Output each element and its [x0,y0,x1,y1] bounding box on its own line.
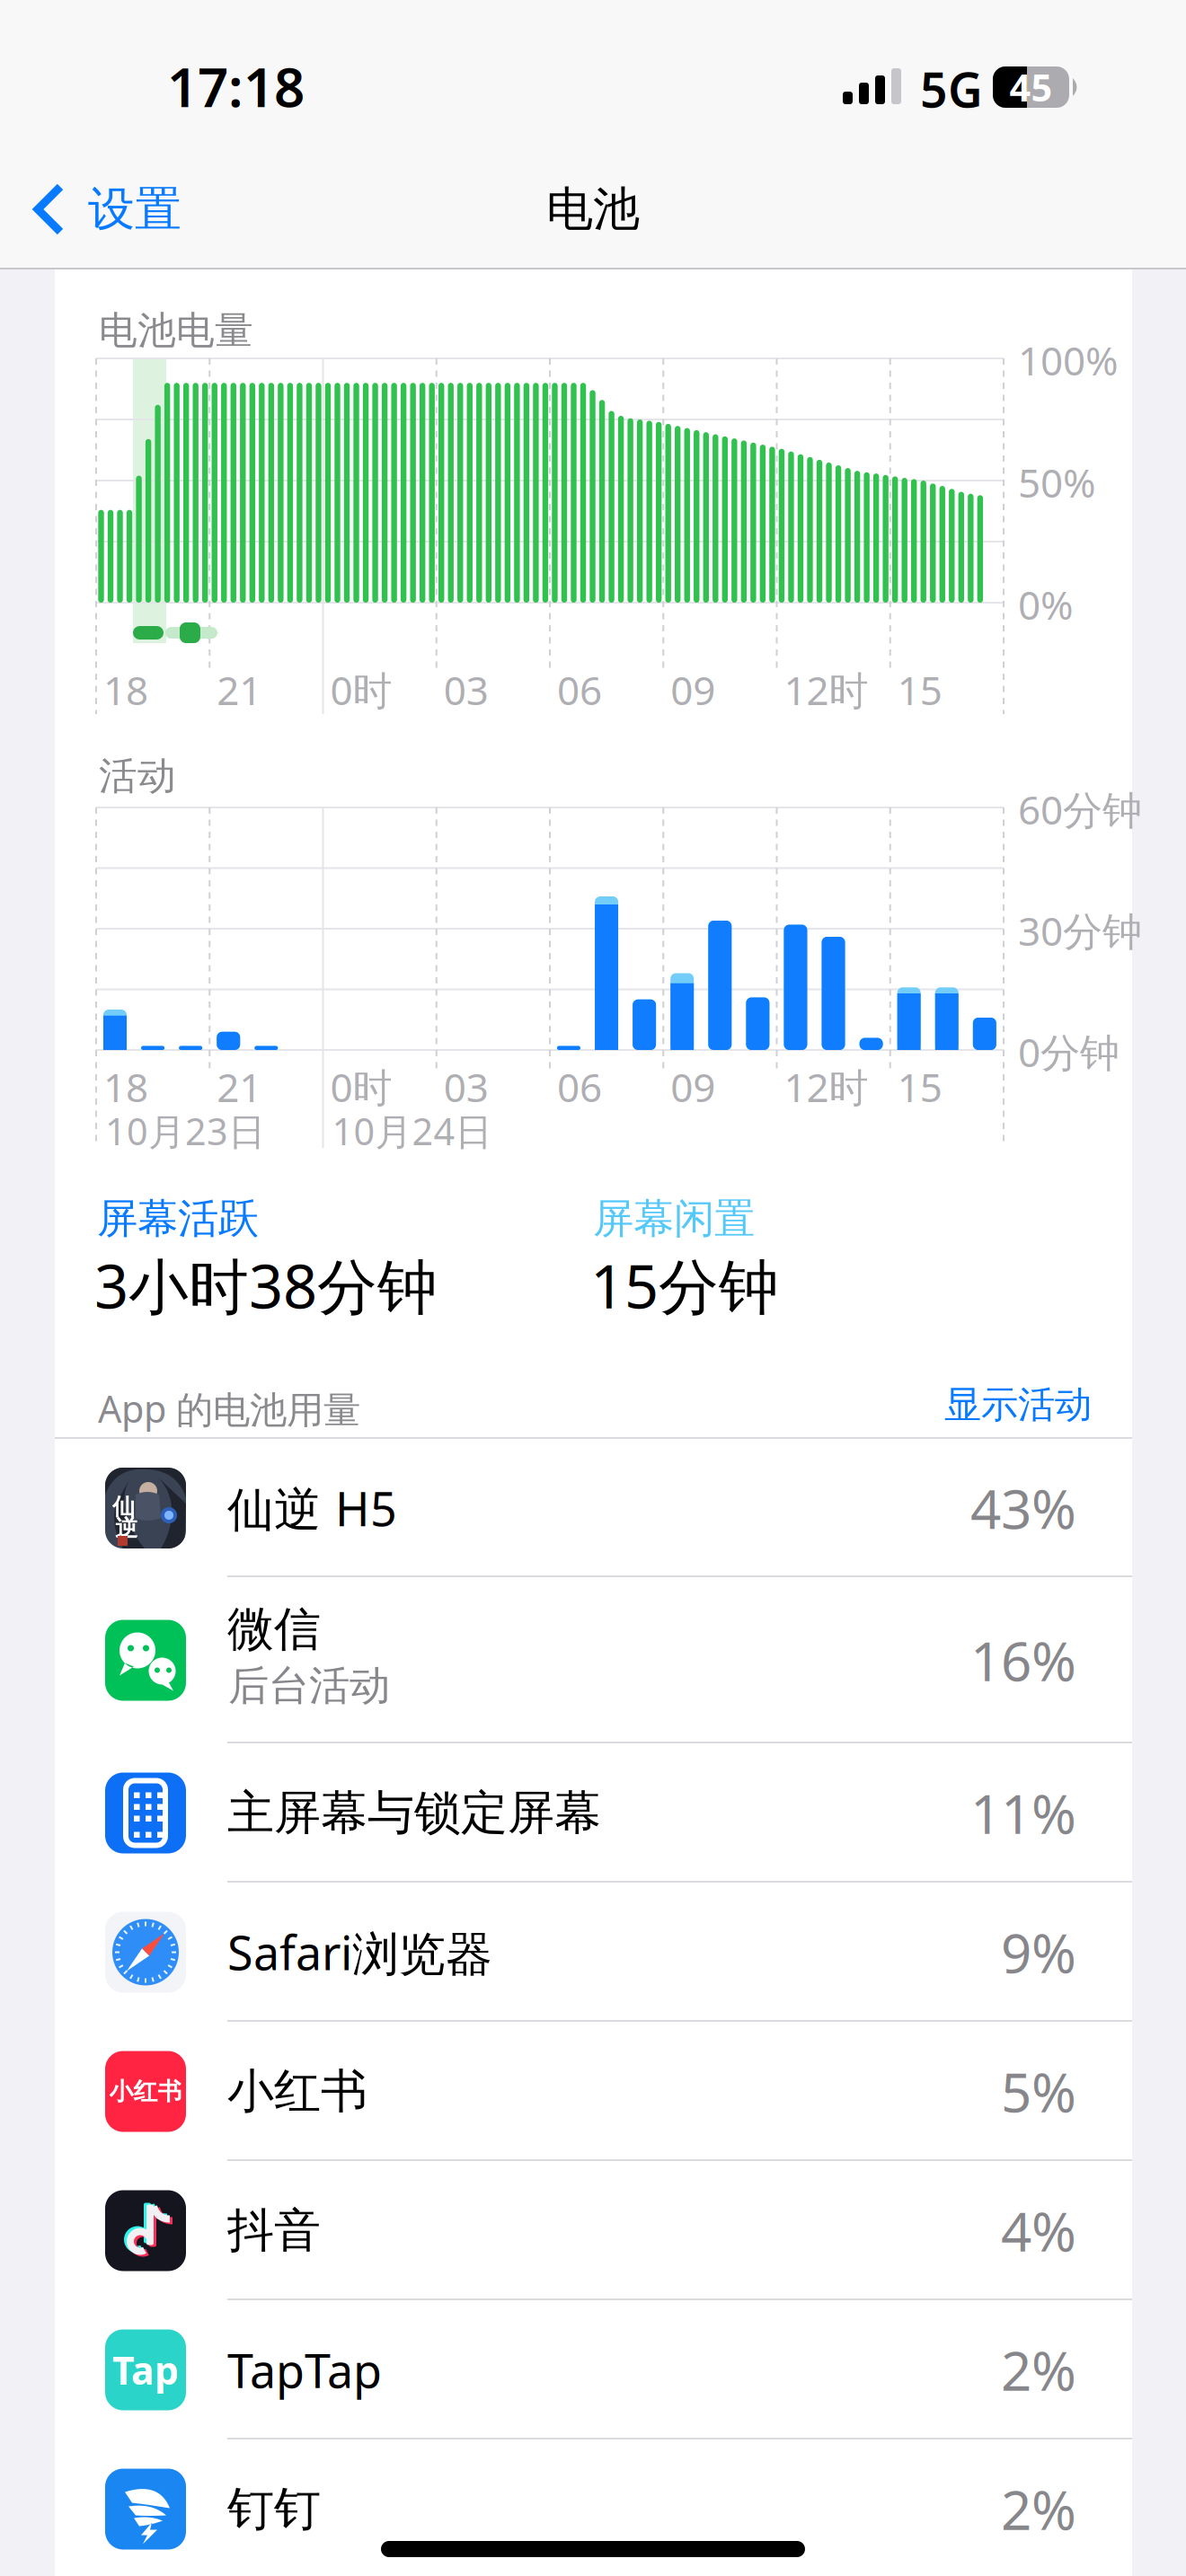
staticText: 设置 [88,181,181,238]
staticText: 5G [920,57,983,121]
staticText: 30分钟 [1018,904,1142,957]
button[interactable]: 返回设置 [33,169,267,250]
button[interactable]: 仙逆 H5 [55,1439,1132,1577]
staticText: 09 [670,1061,715,1113]
button[interactable]: 钉钉 [55,2439,1132,2576]
staticText: Safari浏览器 [227,1921,492,1983]
staticText: 50% [1018,456,1096,509]
staticText: 微信 [227,1601,321,1658]
staticText: 抖音 [227,2202,321,2259]
staticText: 3小时38分钟 [94,1246,438,1325]
staticText: Tap [112,2344,179,2395]
button[interactable]: 小红书 [55,2022,1132,2161]
button[interactable]: 微信 [55,1577,1132,1743]
staticText: TapTap [227,2339,382,2401]
staticText: 21 [217,664,262,716]
staticText: 18 [103,1061,148,1113]
staticText: 仙逆 H5 [227,1477,397,1539]
button[interactable]: TapTap [55,2300,1132,2439]
staticText: 17:18 [167,50,305,122]
staticText: 0分钟 [1018,1026,1120,1078]
button[interactable]: Safari浏览器 [55,1883,1132,2022]
staticText: 06 [557,664,602,716]
staticText: 5% [1001,2056,1076,2127]
staticText: 09 [670,664,715,716]
staticText: 03 [444,1061,489,1113]
staticText: 43% [970,1472,1076,1544]
staticText: 活动 [99,753,176,800]
staticText: 100% [1018,334,1119,386]
staticText: 电池 [546,181,640,238]
staticText: App 的电池用量 [98,1384,360,1433]
staticText: 逆 [115,1514,137,1542]
staticText: 12时 [784,664,868,716]
staticText: 15分钟 [590,1246,779,1325]
staticText: 03 [444,664,489,716]
staticText: 显示活动 [944,1382,1092,1428]
staticText: 06 [557,1061,602,1113]
staticText: 2% [1001,2473,1076,2545]
staticText: 屏幕闲置 [593,1194,755,1244]
staticText: 11% [970,1777,1076,1849]
staticText: 0% [1018,578,1074,631]
staticText: 10月23日 [105,1106,265,1156]
staticText: 18 [103,664,148,716]
staticText: 屏幕活跃 [97,1194,259,1244]
staticText: 16% [970,1625,1076,1696]
staticText: 小红书 [227,2063,367,2120]
button[interactable]: 显示活动 [822,1377,1092,1433]
staticText: 2% [1001,2334,1076,2406]
button[interactable]: 主屏幕与锁定屏幕 [55,1743,1132,1883]
staticText: 4% [1001,2195,1076,2266]
staticText: 12时 [784,1061,868,1113]
staticText: 45 [1009,63,1053,112]
staticText: 21 [217,1061,262,1113]
staticText: 钉钉 [227,2480,321,2538]
staticText: 0时 [330,1061,392,1113]
staticText: 电池电量 [99,307,253,354]
staticText: 9% [1001,1916,1076,1988]
staticText: 主屏幕与锁定屏幕 [227,1784,601,1842]
staticText: 后台活动 [228,1661,390,1711]
staticText: 小红书 [109,2077,182,2106]
staticText: 仙 [112,1493,135,1521]
staticText: 10月24日 [332,1106,492,1156]
staticText: 15 [897,664,942,716]
staticText: 0时 [330,664,392,716]
staticText: 15 [897,1061,942,1113]
button[interactable]: 抖音 [55,2161,1132,2300]
staticText: 60分钟 [1018,783,1142,835]
